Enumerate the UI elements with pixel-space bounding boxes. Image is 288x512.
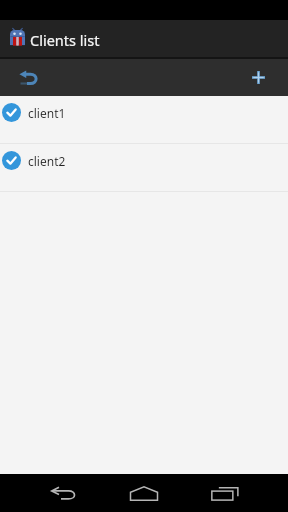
button[interactable]: client2 bbox=[0, 144, 288, 192]
button[interactable]: Home bbox=[120, 474, 168, 512]
staticText: Clients list bbox=[30, 30, 100, 50]
staticText: client1 bbox=[28, 105, 66, 121]
button[interactable]: Add bbox=[240, 59, 288, 96]
staticText: client2 bbox=[28, 153, 66, 169]
button[interactable]: Recents bbox=[201, 474, 249, 512]
button[interactable]: client1 bbox=[0, 96, 288, 144]
button[interactable]: Back bbox=[39, 474, 87, 512]
button[interactable]: Undo bbox=[0, 59, 48, 96]
